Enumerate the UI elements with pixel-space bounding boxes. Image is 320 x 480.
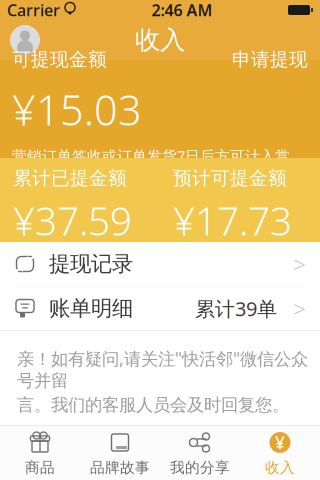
- staticText: 账单明细: [49, 295, 133, 322]
- staticText: 可提现金额: [12, 48, 107, 71]
- staticText: Carrier: [7, 0, 60, 21]
- button[interactable]: 商品: [0, 426, 80, 480]
- staticText: 预计可提金额: [173, 167, 287, 190]
- staticText: 收入: [265, 458, 295, 476]
- button[interactable]: 品牌故事: [80, 426, 160, 480]
- staticText: 提现记录: [49, 251, 133, 277]
- staticText: 商品: [25, 458, 55, 476]
- staticText: >: [293, 249, 306, 279]
- staticText: 亲！如有疑问,请关注"快活邻"微信公众号并留: [17, 347, 308, 391]
- staticText: 我的分享: [170, 458, 230, 476]
- staticText: 收入: [135, 24, 185, 55]
- button[interactable]: 申请提现: [224, 45, 308, 74]
- staticText: 申请提现: [232, 48, 308, 71]
- button[interactable]: Profile: [0, 20, 56, 60]
- button[interactable]: 我的分享: [160, 426, 240, 480]
- staticText: 营销订单签收或订单发货7日后方可计入赏金!: [12, 146, 290, 185]
- staticText: >: [293, 293, 306, 323]
- staticText: 2:46 AM: [151, 0, 212, 21]
- button[interactable]: 账单明细: [0, 286, 320, 330]
- staticText: 累计39单: [195, 295, 277, 322]
- staticText: 言。我们的客服人员会及时回复您。: [17, 394, 289, 416]
- staticText: 品牌故事: [90, 458, 150, 476]
- button[interactable]: ¥: [240, 426, 320, 480]
- button[interactable]: 提现记录: [0, 242, 320, 286]
- staticText: 累计已提金额: [13, 167, 127, 190]
- staticText: ¥37.59: [13, 195, 132, 246]
- staticText: ¥: [275, 431, 285, 454]
- staticText: ¥15.03: [12, 82, 142, 137]
- staticText: ¥17.73: [173, 195, 292, 246]
